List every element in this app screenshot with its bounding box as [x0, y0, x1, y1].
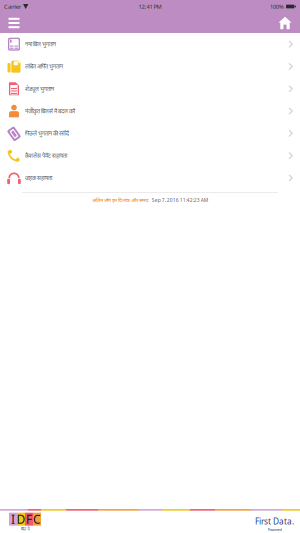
button[interactable]: Home	[272, 13, 298, 33]
staticText: 100%	[270, 3, 284, 10]
staticText: अंतिम लॉग इन दिनांक और समय:	[92, 197, 149, 203]
staticText: शेड्यूल भुगतान	[25, 85, 54, 92]
staticText: बिल पे	[20, 526, 29, 532]
staticText: पंजीकृत बिलर्स में बदल करें	[25, 107, 75, 115]
staticText: पिछले भुगतान की रसीदें	[25, 129, 69, 137]
staticText: C	[33, 511, 41, 527]
staticText: Carrier	[4, 3, 21, 10]
button[interactable]: शेड्यूल भुगतान	[0, 78, 300, 100]
staticText: 12:41 PM	[138, 3, 161, 10]
button[interactable]: लंबित अर्पित भुगतान	[0, 55, 300, 78]
staticText: Powered	[267, 527, 281, 532]
staticText: I	[11, 511, 15, 527]
staticText: Sep 7, 2016 11:42:23 AM	[152, 197, 208, 203]
button[interactable]: कैशलेस पेमेंट सहायता	[0, 144, 300, 167]
staticText: नया बिल भुगतान	[25, 40, 56, 48]
staticText: D	[16, 511, 25, 527]
staticText: F	[26, 511, 32, 527]
staticText: First Data.	[255, 516, 294, 527]
button[interactable]: Menu	[1, 13, 27, 33]
staticText: कैशलेस पेमेंट सहायता	[25, 152, 67, 159]
staticText: ग्राहक सहायता	[25, 174, 52, 182]
staticText: लंबित अर्पित भुगतान	[25, 63, 63, 70]
button[interactable]: ग्राहक सहायता	[0, 167, 300, 189]
button[interactable]: नया बिल भुगतान	[0, 33, 300, 55]
button[interactable]: पंजीकृत बिलर्स में बदल करें	[0, 100, 300, 122]
button[interactable]: पिछले भुगतान की रसीदें	[0, 122, 300, 144]
